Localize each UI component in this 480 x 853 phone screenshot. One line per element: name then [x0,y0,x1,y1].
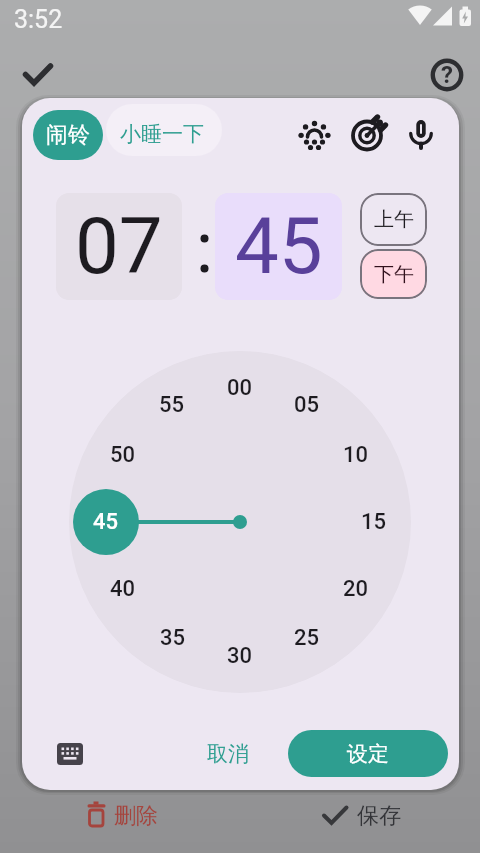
staticText: 00 [227,375,253,401]
staticText: 保存 [357,802,401,828]
staticText: 45 [235,201,323,292]
staticText: 50 [110,442,136,468]
staticText: ? [441,61,453,89]
staticText: 30 [227,643,253,669]
staticText: 20 [343,576,369,602]
button[interactable] [400,113,446,159]
button[interactable]: 删除 [110,802,162,828]
staticText: 小睡一下 [120,121,204,147]
button[interactable] [345,113,391,159]
button[interactable]: 闹铃 [33,110,103,160]
button[interactable] [106,104,222,156]
staticText: 35 [160,625,186,651]
staticText: 3:52 [14,5,63,34]
staticText: 05 [294,392,320,418]
staticText: 上午 [374,207,414,232]
staticText: 15 [361,509,387,535]
staticText: 闹铃 [46,121,90,149]
button[interactable]: 下午 [360,249,427,299]
staticText: 40 [110,576,136,602]
staticText: 10 [343,442,369,468]
staticText: 取消 [207,741,249,767]
staticText: 删除 [114,802,158,828]
button[interactable]: 07 [56,193,182,300]
button[interactable]: 设定 [288,730,448,777]
button[interactable]: 上午 [360,193,427,246]
button[interactable] [47,731,93,777]
staticText: 55 [159,392,185,418]
button[interactable]: 保存 [353,802,405,828]
staticText: 下午 [374,262,414,287]
staticText: 45 [93,509,119,535]
staticText: 25 [294,625,320,651]
staticText: 设定 [347,741,389,767]
staticText: 07 [75,201,163,292]
button[interactable] [292,113,338,159]
button[interactable]: 45 [215,193,342,300]
button[interactable]: 取消 [188,730,268,778]
